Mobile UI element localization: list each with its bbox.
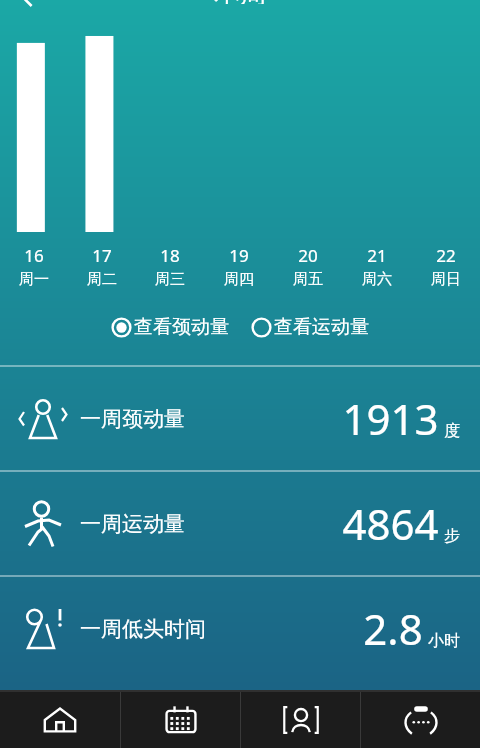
staticText: 周一 (19, 270, 49, 289)
staticText: 19 (229, 244, 249, 267)
button[interactable]: 一周运动量 (0, 472, 480, 575)
staticText: 周三 (155, 270, 185, 289)
staticText: 一周颈动量 (80, 406, 185, 432)
staticText: 21 (367, 244, 387, 267)
staticText: 步 (444, 526, 460, 546)
button[interactable]: 查看颈动量 (109, 311, 231, 343)
staticText: 2.8 (363, 600, 423, 657)
staticText: 查看颈动量 (134, 315, 229, 339)
button[interactable]: 查看运动量 (249, 311, 371, 343)
staticText: 度 (444, 421, 460, 441)
staticText: 20 (298, 244, 318, 267)
staticText: 周五 (293, 270, 323, 289)
button[interactable]: 一周低头时间 (0, 577, 480, 680)
staticText: 查看运动量 (274, 315, 369, 339)
staticText: 小时 (428, 631, 460, 651)
staticText: 4864 (342, 495, 439, 552)
staticText: 周六 (362, 270, 392, 289)
staticText: 1913 (342, 390, 439, 447)
button[interactable]: Calendar (121, 692, 240, 748)
staticText: 17 (92, 244, 112, 267)
staticText: 本周 (214, 0, 266, 4)
staticText: 18 (160, 244, 180, 267)
staticText: 一周运动量 (80, 511, 185, 537)
button[interactable]: 一周颈动量 (0, 367, 480, 470)
staticText: 周二 (87, 270, 117, 289)
staticText: 周日 (431, 270, 461, 289)
button[interactable]: Back (18, 0, 40, 10)
button[interactable]: Profile (241, 692, 360, 748)
staticText: 周四 (224, 270, 254, 289)
staticText: 一周低头时间 (80, 616, 206, 642)
staticText: 16 (24, 244, 44, 267)
staticText: 22 (436, 244, 456, 267)
button[interactable]: More (361, 692, 480, 748)
button[interactable]: Home (0, 692, 120, 748)
